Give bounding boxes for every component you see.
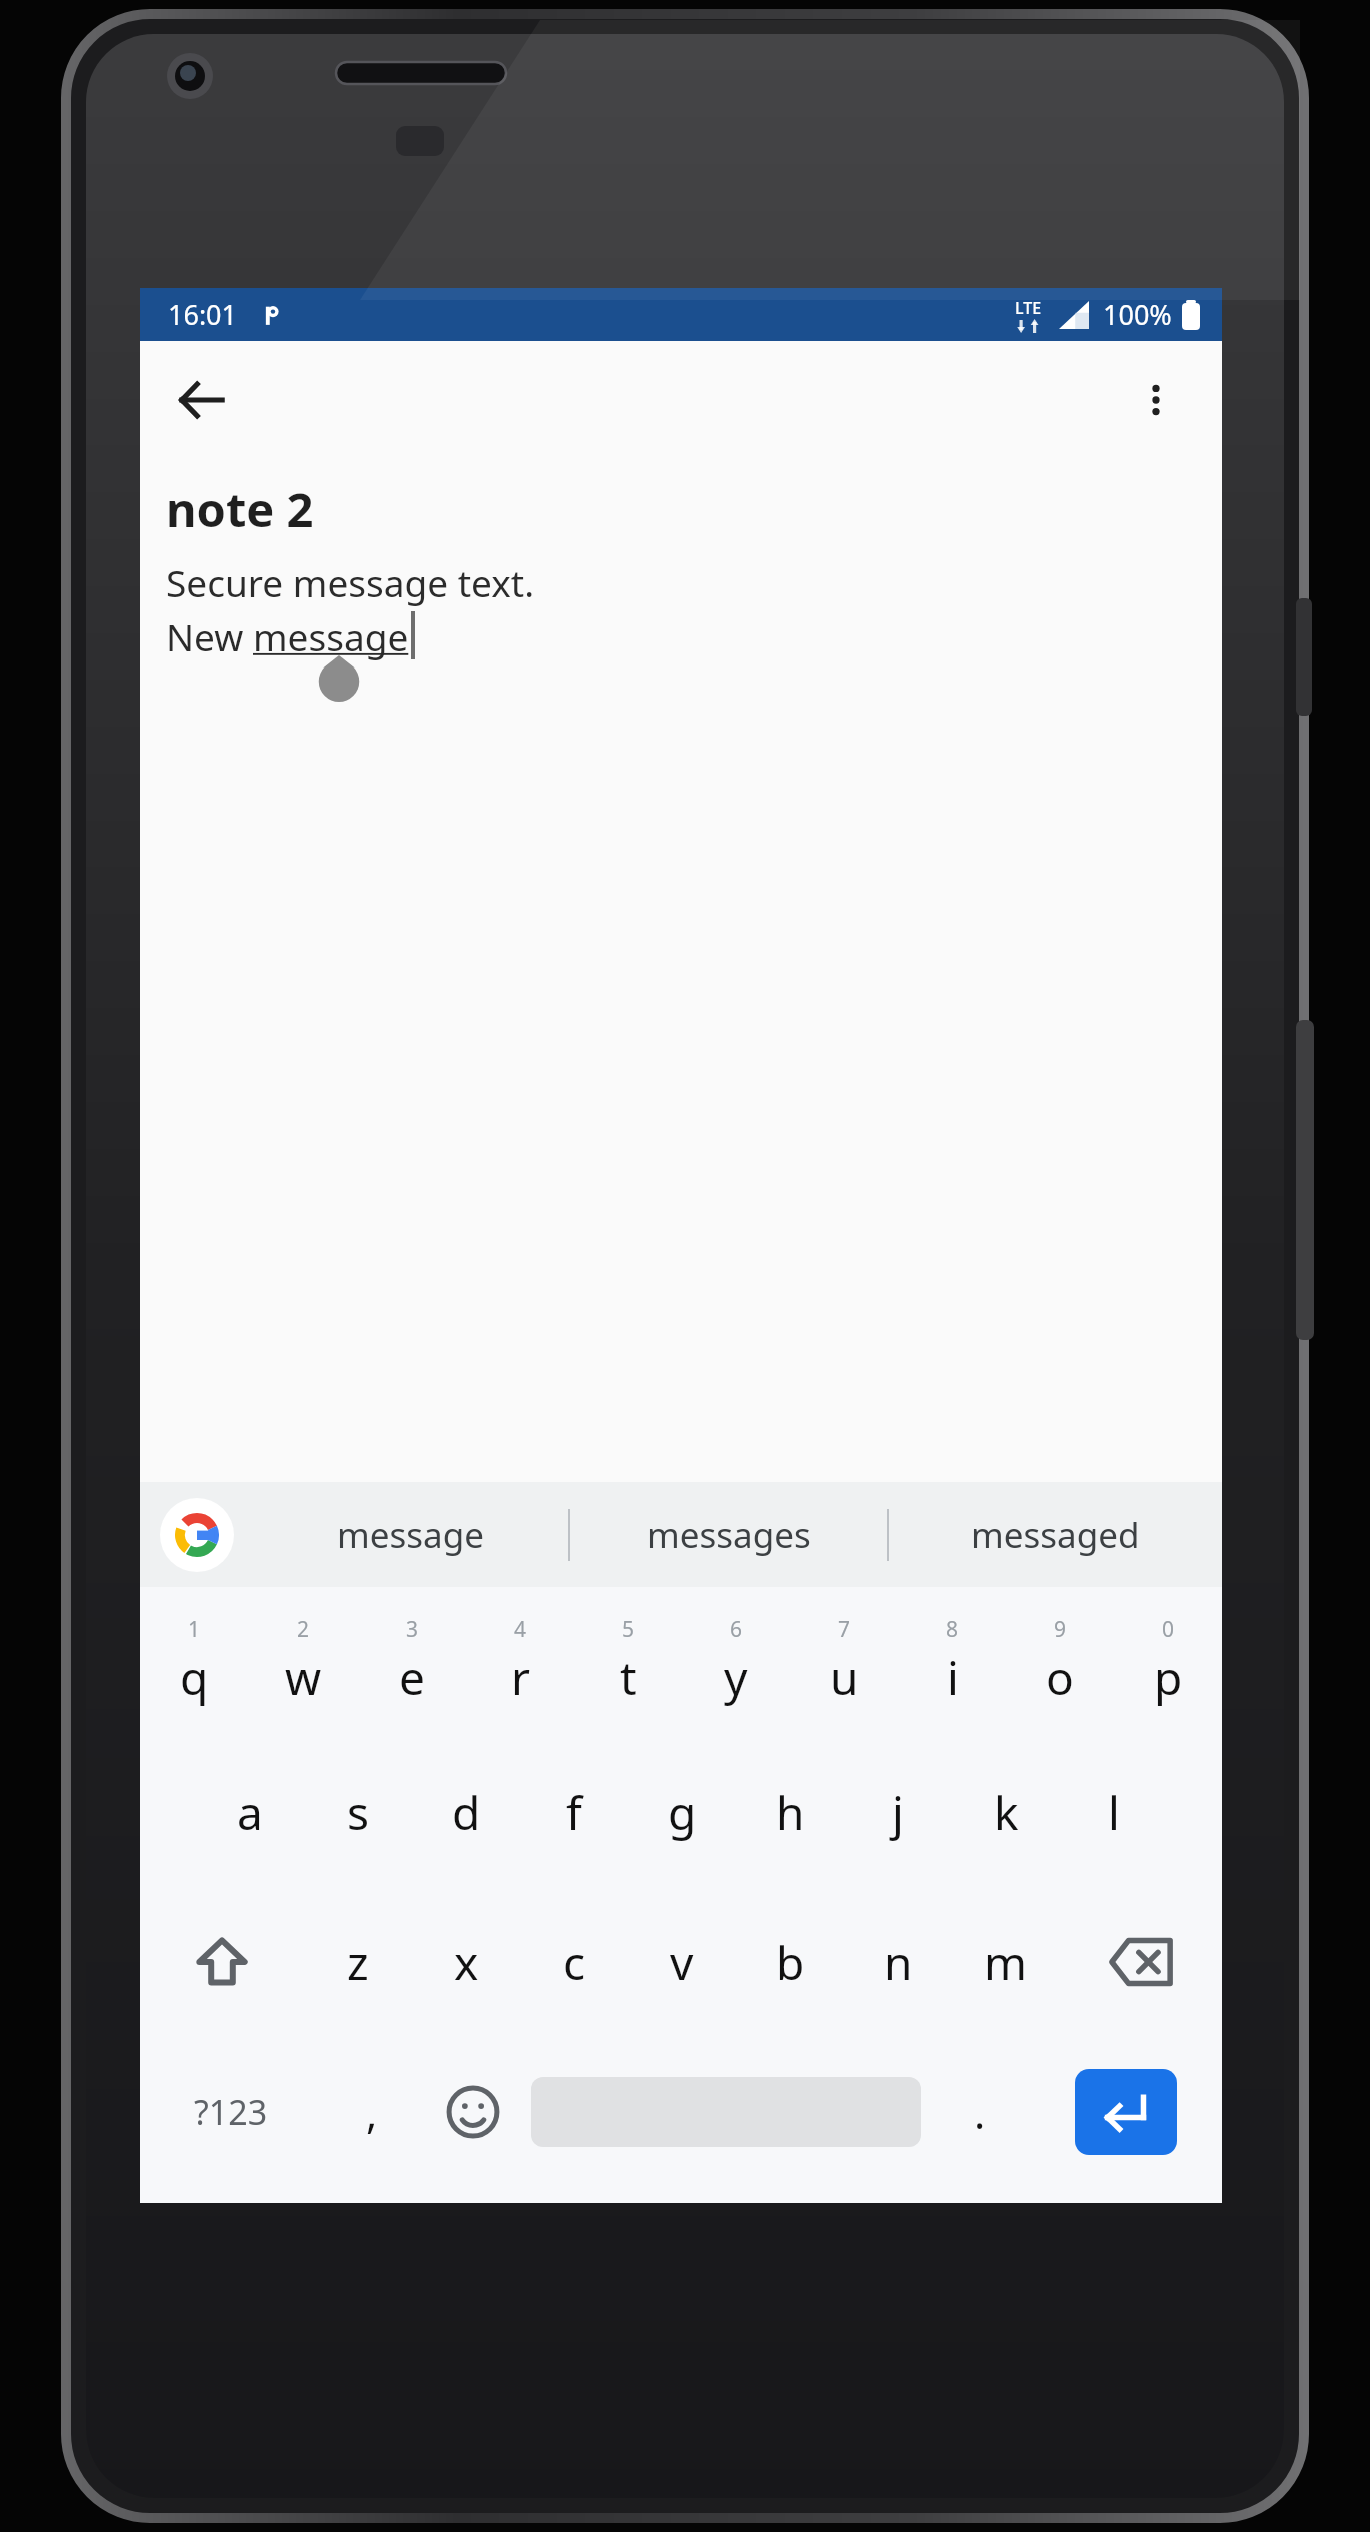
staticText: messaged	[971, 1511, 1140, 1559]
button[interactable]: .	[929, 2037, 1030, 2187]
staticText: r	[511, 1646, 530, 1709]
button[interactable]: 3	[358, 1587, 466, 1737]
staticText: 2	[297, 1615, 310, 1644]
button[interactable]: message	[252, 1482, 568, 1587]
button[interactable]: Back	[154, 352, 250, 448]
staticText: 9	[1054, 1615, 1067, 1644]
staticText: t	[620, 1646, 637, 1709]
button[interactable]: 2	[249, 1587, 358, 1737]
staticText: 7	[838, 1615, 851, 1644]
button[interactable]: g	[628, 1737, 736, 1887]
staticText: v	[670, 1931, 694, 1994]
staticText: i	[947, 1646, 959, 1709]
button[interactable]: l	[1060, 1737, 1168, 1887]
button[interactable]: Space	[523, 2037, 929, 2187]
button[interactable]: x	[412, 1887, 520, 2037]
other: Text cursor handle	[316, 655, 362, 701]
button[interactable]: 5	[574, 1587, 682, 1737]
button[interactable]: Enter	[1030, 2037, 1222, 2187]
staticText: Secure message text.	[166, 557, 535, 607]
button[interactable]: 0	[1114, 1587, 1222, 1737]
staticText: LTE	[1015, 297, 1042, 319]
staticText: e	[399, 1646, 425, 1709]
button[interactable]: ?123	[140, 2037, 321, 2187]
button[interactable]: b	[736, 1887, 844, 2037]
staticText: n	[884, 1931, 913, 1994]
staticText: message	[253, 611, 409, 661]
staticText: w	[285, 1646, 322, 1709]
staticText: 100%	[1103, 296, 1172, 333]
button[interactable]: m	[952, 1887, 1060, 2037]
staticText: a	[237, 1781, 263, 1844]
button[interactable]: Emoji	[422, 2037, 523, 2187]
staticText: u	[830, 1646, 859, 1709]
button[interactable]: 6	[682, 1587, 790, 1737]
button[interactable]: 7	[790, 1587, 898, 1737]
button[interactable]: a	[195, 1737, 304, 1887]
staticText: 3	[406, 1615, 419, 1644]
staticText: k	[994, 1781, 1019, 1844]
staticText: o	[1046, 1646, 1074, 1709]
staticText: .	[974, 2084, 986, 2141]
button[interactable]: n	[844, 1887, 952, 2037]
staticText: j	[892, 1781, 904, 1844]
staticText: 0	[1162, 1615, 1175, 1644]
staticText: p	[1154, 1646, 1183, 1709]
staticText: l	[1108, 1781, 1120, 1844]
staticText: 4	[514, 1615, 527, 1644]
button[interactable]: z	[303, 1887, 412, 2037]
button[interactable]: j	[844, 1737, 952, 1887]
staticText: 6	[730, 1615, 743, 1644]
staticText: New	[166, 611, 253, 661]
staticText: message	[337, 1511, 484, 1559]
staticText: f	[566, 1781, 582, 1844]
button[interactable]: Google	[160, 1498, 234, 1572]
button[interactable]: Shift	[140, 1887, 303, 2037]
staticText: ,	[366, 2084, 378, 2141]
staticText: d	[452, 1781, 481, 1844]
button[interactable]: messages	[570, 1482, 887, 1587]
staticText: m	[984, 1931, 1028, 1994]
button[interactable]: h	[736, 1737, 844, 1887]
button[interactable]: s	[304, 1737, 412, 1887]
button[interactable]: More options	[1108, 352, 1204, 448]
staticText: q	[180, 1646, 209, 1709]
button[interactable]: c	[520, 1887, 628, 2037]
staticText: c	[563, 1931, 586, 1994]
button[interactable]: v	[628, 1887, 736, 2037]
staticText: 8	[946, 1615, 959, 1644]
staticText: g	[668, 1781, 697, 1844]
button[interactable]: k	[952, 1737, 1060, 1887]
button[interactable]: 8	[898, 1587, 1006, 1737]
staticText: s	[347, 1781, 370, 1844]
button[interactable]: 1	[140, 1587, 249, 1737]
staticText: ?123	[194, 2089, 268, 2135]
button[interactable]: 4	[466, 1587, 574, 1737]
staticText: b	[776, 1931, 805, 1994]
staticText: x	[454, 1931, 479, 1994]
staticText: messages	[647, 1511, 811, 1559]
staticText: 16:01	[168, 296, 238, 333]
staticText: note 2	[166, 477, 314, 541]
button[interactable]: f	[520, 1737, 628, 1887]
staticText: 1	[188, 1615, 201, 1644]
staticText: 5	[622, 1615, 635, 1644]
button[interactable]: Backspace	[1060, 1887, 1222, 2037]
button[interactable]: 9	[1006, 1587, 1114, 1737]
button[interactable]: ,	[321, 2037, 422, 2187]
staticText: y	[724, 1646, 748, 1709]
staticText: h	[776, 1781, 805, 1844]
button[interactable]: d	[412, 1737, 520, 1887]
staticText: z	[347, 1931, 369, 1994]
button[interactable]: messaged	[889, 1482, 1222, 1587]
